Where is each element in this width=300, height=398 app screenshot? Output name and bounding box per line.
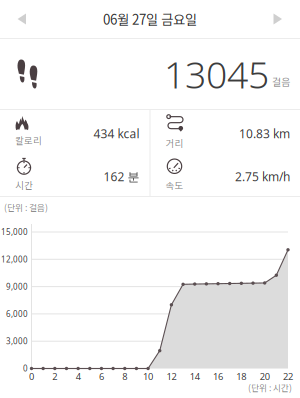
staticText: 0: [29, 370, 34, 383]
staticText: 06월 27일 금요일: [103, 9, 197, 29]
button[interactable]: Next day: [256, 0, 300, 38]
staticText: 0: [23, 363, 28, 374]
staticText: 9,000: [6, 281, 28, 292]
staticText: 13045: [164, 49, 269, 99]
staticText: 10.83 km: [239, 125, 290, 141]
staticText: 10: [143, 370, 153, 383]
staticText: 2: [52, 370, 57, 383]
staticText: 칼로리: [15, 133, 42, 147]
staticText: 16: [213, 370, 223, 383]
staticText: 12: [166, 370, 176, 383]
button[interactable]: Previous day: [0, 0, 44, 38]
staticText: 4: [76, 370, 81, 383]
staticText: 12,000: [1, 254, 28, 265]
staticText: (단위 : 걸음): [4, 201, 48, 213]
staticText: 3,000: [6, 336, 28, 346]
staticText: (단위 : 시간): [248, 381, 292, 394]
staticText: 18: [236, 370, 246, 383]
staticText: 162 분: [103, 168, 139, 184]
staticText: 2.75 km/h: [235, 168, 290, 184]
staticText: 속도: [165, 178, 183, 192]
staticText: 거리: [165, 136, 183, 150]
staticText: 6,000: [6, 309, 28, 319]
staticText: 8: [122, 370, 127, 383]
staticText: 걸음: [272, 74, 290, 89]
staticText: 시간: [15, 178, 33, 192]
staticText: 14: [190, 370, 200, 383]
staticText: 15,000: [1, 227, 28, 237]
staticText: 20: [260, 370, 270, 383]
staticText: 434 kcal: [93, 125, 139, 141]
staticText: 6: [99, 370, 104, 383]
staticText: 22: [283, 370, 293, 383]
